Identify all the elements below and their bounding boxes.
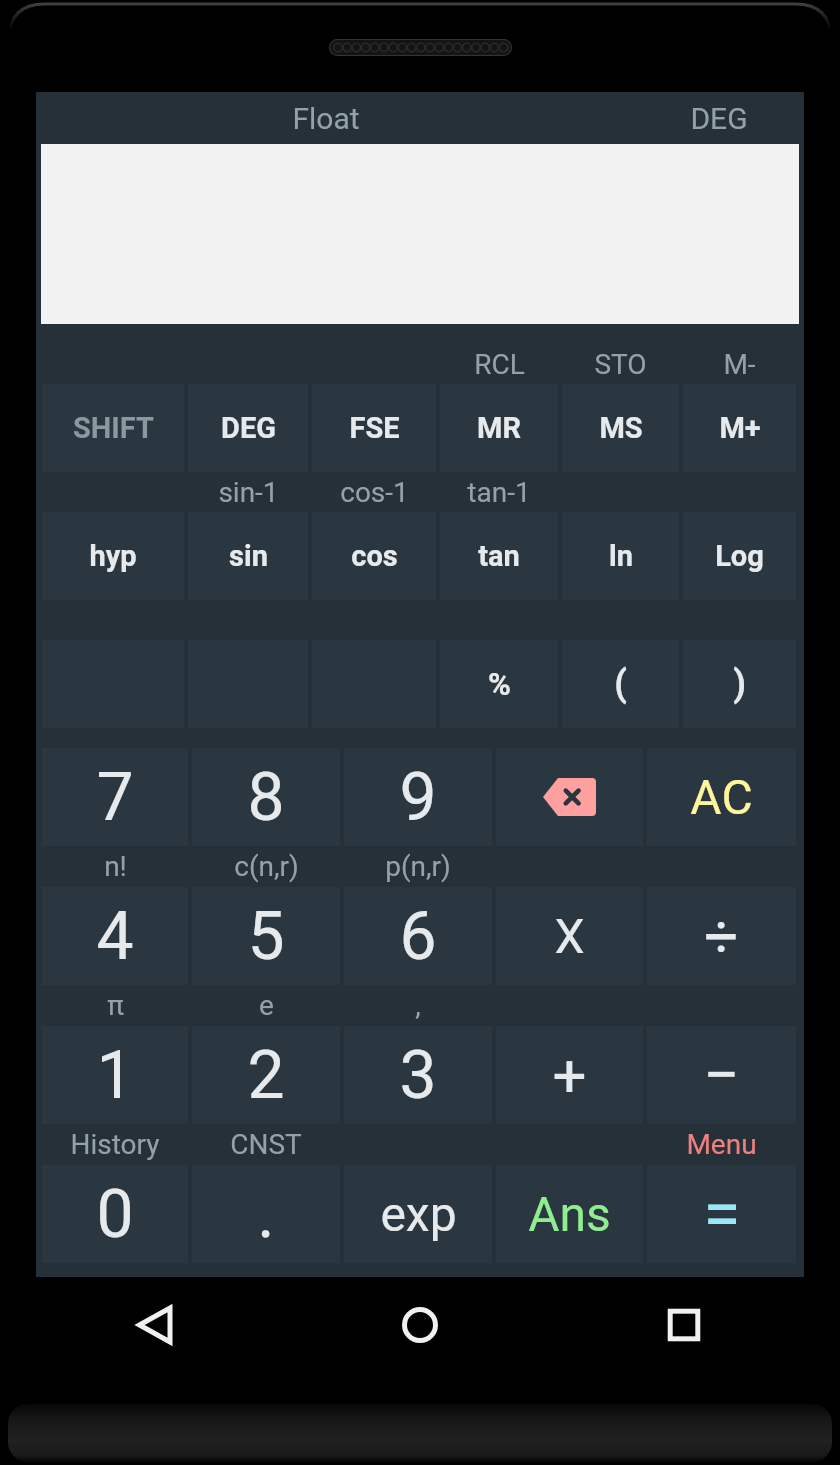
staticText: AC xyxy=(690,769,753,825)
button[interactable]: Back xyxy=(116,1285,196,1365)
staticText: e xyxy=(259,989,274,1022)
button[interactable]: ÷ xyxy=(647,887,796,985)
button[interactable]: exp xyxy=(344,1165,492,1263)
staticText: Log xyxy=(715,539,764,573)
staticText: Menu xyxy=(686,1128,757,1161)
staticText: ( xyxy=(614,663,627,705)
staticText: , xyxy=(415,989,421,1022)
staticText: Ans xyxy=(528,1186,611,1242)
staticText: DEG xyxy=(690,101,748,136)
button[interactable]: 4 xyxy=(42,887,188,985)
staticText: sin xyxy=(229,539,268,573)
staticText: 2 xyxy=(247,1037,285,1114)
button[interactable]: ln xyxy=(562,512,679,600)
button[interactable]: Ans xyxy=(496,1165,643,1263)
button[interactable]: Log xyxy=(683,512,796,600)
button[interactable]: Home xyxy=(380,1285,460,1365)
staticText: 9 xyxy=(399,759,437,836)
staticText: = xyxy=(703,1174,741,1254)
button[interactable]: 7 xyxy=(42,748,188,846)
button[interactable]: 5 xyxy=(192,887,340,985)
button[interactable]: DEG xyxy=(188,384,308,472)
button[interactable] xyxy=(496,748,643,846)
staticText: RCL xyxy=(474,348,525,381)
button[interactable]: FSE xyxy=(312,384,436,472)
staticText: exp xyxy=(380,1186,457,1242)
button[interactable]: 0 xyxy=(42,1165,188,1263)
button[interactable]: = xyxy=(647,1165,796,1263)
staticText: sin-1 xyxy=(218,476,279,509)
staticText: SHIFT xyxy=(73,411,154,445)
staticText: DEG xyxy=(221,411,276,445)
staticText: − xyxy=(703,1038,740,1113)
staticText: tan-1 xyxy=(467,476,531,509)
staticText: M+ xyxy=(719,411,761,445)
staticText: % xyxy=(488,666,511,702)
button[interactable]: tan xyxy=(440,512,558,600)
staticText: + xyxy=(552,1040,587,1110)
button[interactable]: cos xyxy=(312,512,436,600)
staticText: MR xyxy=(477,411,521,445)
staticText: 5 xyxy=(247,898,285,975)
staticText: X xyxy=(554,908,585,964)
button[interactable]: 9 xyxy=(344,748,492,846)
button[interactable]: % xyxy=(440,640,558,728)
staticText: ln xyxy=(609,539,633,573)
button[interactable]: ) xyxy=(683,640,796,728)
button[interactable]: 2 xyxy=(192,1026,340,1124)
staticText: c(n,r) xyxy=(234,850,299,883)
button[interactable]: − xyxy=(647,1026,796,1124)
staticText: FSE xyxy=(349,411,400,445)
staticText: cos-1 xyxy=(340,476,409,509)
staticText: CNST xyxy=(230,1128,302,1161)
staticText: p(n,r) xyxy=(385,850,451,883)
staticText: STO xyxy=(594,348,647,381)
staticText: 4 xyxy=(96,898,134,975)
button[interactable]: ( xyxy=(562,640,679,728)
button[interactable]: 3 xyxy=(344,1026,492,1124)
button[interactable]: MR xyxy=(440,384,558,472)
staticText: hyp xyxy=(89,539,137,573)
staticText: 0 xyxy=(96,1176,134,1253)
button[interactable]: 1 xyxy=(42,1026,188,1124)
button[interactable]: sin xyxy=(188,512,308,600)
staticText: π xyxy=(107,989,124,1022)
staticText: M- xyxy=(723,348,756,381)
staticText: cos xyxy=(351,539,398,573)
button[interactable]: M+ xyxy=(683,384,796,472)
staticText: MS xyxy=(599,411,643,445)
staticText: 1 xyxy=(96,1037,134,1114)
button[interactable]: AC xyxy=(647,748,796,846)
staticText: 6 xyxy=(399,898,437,975)
staticText: 7 xyxy=(96,759,134,836)
staticText: . xyxy=(257,1176,275,1253)
button[interactable]: DEG xyxy=(640,92,798,144)
staticText: tan xyxy=(478,539,520,573)
button[interactable]: + xyxy=(496,1026,643,1124)
staticText: ) xyxy=(733,663,746,705)
button[interactable]: Float xyxy=(240,92,412,144)
button[interactable]: . xyxy=(192,1165,340,1263)
button[interactable]: hyp xyxy=(42,512,184,600)
button[interactable]: X xyxy=(496,887,643,985)
staticText: n! xyxy=(104,850,127,883)
button[interactable]: 8 xyxy=(192,748,340,846)
button[interactable]: MS xyxy=(562,384,679,472)
button[interactable]: Recent apps xyxy=(644,1285,724,1365)
button[interactable]: SHIFT xyxy=(42,384,184,472)
staticText: Float xyxy=(292,101,360,136)
staticText: 8 xyxy=(247,759,285,836)
button[interactable]: 6 xyxy=(344,887,492,985)
staticText: ÷ xyxy=(704,901,739,971)
staticText: 3 xyxy=(399,1037,437,1114)
staticText: History xyxy=(70,1128,160,1161)
